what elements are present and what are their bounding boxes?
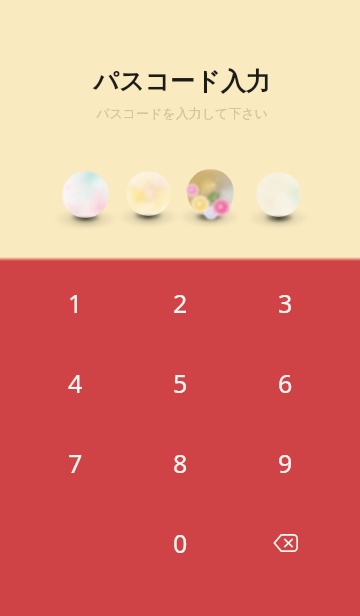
staticText: 6 [278,366,293,400]
staticText: パスコードを入力して下さい [2,105,360,121]
staticText: 3 [278,286,293,320]
other: Delete [273,534,298,552]
staticText: 9 [278,446,293,480]
button[interactable]: 6 [233,343,338,423]
button[interactable]: 5 [128,343,233,423]
button[interactable]: 2 [128,263,233,343]
staticText: 0 [173,526,188,560]
staticText: 2 [173,286,188,320]
staticText: 5 [173,366,188,400]
button[interactable]: 4 [23,343,128,423]
button[interactable]: 8 [128,423,233,503]
staticText: 4 [68,366,83,400]
button[interactable]: 0 [128,503,233,583]
button[interactable]: 9 [233,423,338,503]
staticText: 8 [173,446,188,480]
button[interactable]: 7 [23,423,128,503]
button[interactable]: 3 [233,263,338,343]
staticText: 7 [68,446,83,480]
staticText: パスコード入力 [2,66,360,97]
staticText: 1 [68,286,83,320]
button[interactable]: Delete [233,503,338,583]
button[interactable]: 1 [23,263,128,343]
